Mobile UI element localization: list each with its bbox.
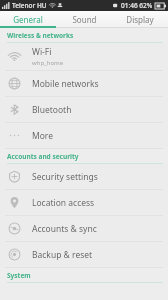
other: Mobile networks xyxy=(8,77,21,90)
button[interactable]: Accounts & sync xyxy=(0,216,168,241)
other: Wi-Fi xyxy=(8,50,21,63)
button[interactable]: Bluetooth xyxy=(0,97,168,122)
staticText: Backup & reset xyxy=(32,249,93,261)
staticText: System xyxy=(7,271,31,280)
button[interactable]: More xyxy=(0,123,168,148)
button[interactable]: Wi-Fi xyxy=(0,43,168,70)
other: Accounts & sync xyxy=(8,222,21,235)
staticText: General xyxy=(13,14,43,25)
button[interactable]: General xyxy=(0,11,56,28)
button[interactable]: Backup & reset xyxy=(0,242,168,267)
staticText: whp_home xyxy=(32,59,64,67)
staticText: Bluetooth xyxy=(32,104,72,116)
staticText: Sound xyxy=(72,14,97,25)
staticText: Mobile networks xyxy=(32,78,99,90)
other: More xyxy=(8,129,21,142)
staticText: Location access xyxy=(32,197,95,209)
staticText: Wi-Fi xyxy=(32,46,52,58)
button[interactable]: Display xyxy=(112,11,168,28)
other: Location access xyxy=(8,196,21,209)
staticText: Accounts & sync xyxy=(32,223,97,235)
staticText: Accounts and security xyxy=(7,152,79,161)
staticText: Wireless & networks xyxy=(7,31,74,40)
staticText: 01:46 62% xyxy=(121,1,153,10)
other: Bluetooth xyxy=(8,103,21,116)
other: Security settings xyxy=(8,170,21,183)
button[interactable]: Mobile networks xyxy=(0,71,168,96)
staticText: Display xyxy=(126,14,154,25)
button[interactable]: Security settings xyxy=(0,164,168,189)
staticText: Security settings xyxy=(32,171,98,183)
button[interactable]: Location access xyxy=(0,190,168,215)
staticText: Telenor HU xyxy=(12,1,47,10)
button[interactable]: Sound xyxy=(56,11,112,28)
staticText: More xyxy=(32,130,53,142)
other: Backup & reset xyxy=(8,248,21,261)
